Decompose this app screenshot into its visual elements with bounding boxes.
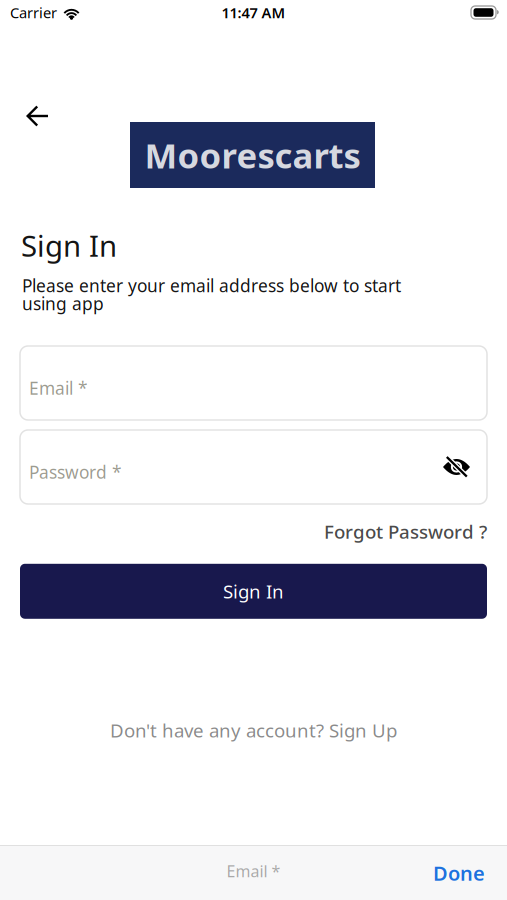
staticText: Email * — [29, 376, 88, 399]
staticText: Sign In — [21, 226, 117, 265]
textField[interactable]: Email * — [29, 376, 249, 399]
staticText: Carrier — [10, 3, 57, 22]
button[interactable]: Sign Up — [329, 718, 397, 743]
staticText: Sign In — [223, 579, 284, 604]
button[interactable]: Sign In — [20, 564, 487, 619]
staticText: Sign Up — [329, 718, 397, 743]
staticText: Moorescarts — [144, 132, 360, 178]
staticText: 11:47 AM — [221, 3, 285, 22]
button[interactable]: Back — [27, 105, 49, 126]
staticText: Password * — [29, 460, 122, 483]
staticText: Email * — [226, 860, 280, 882]
staticText: using app — [22, 292, 104, 315]
staticText: Done — [433, 860, 485, 886]
button[interactable]: Show password — [443, 457, 470, 477]
button[interactable]: Forgot Password ? — [324, 519, 487, 544]
button[interactable]: Done — [433, 860, 507, 886]
staticText: Don't have any account? — [110, 718, 329, 743]
staticText: Please enter your email address below to… — [22, 274, 401, 297]
staticText: Forgot Password ? — [324, 519, 487, 544]
textField[interactable]: Password * — [29, 460, 236, 483]
